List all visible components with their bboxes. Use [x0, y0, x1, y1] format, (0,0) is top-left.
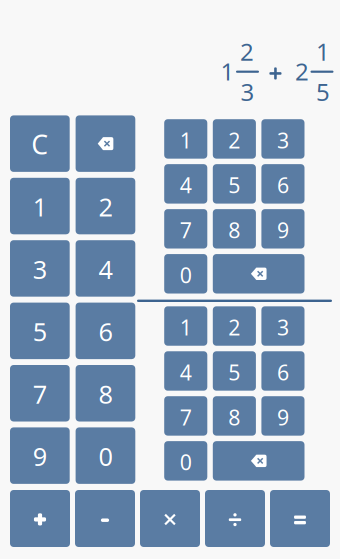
staticText: 6: [98, 315, 112, 348]
staticText: 9: [277, 216, 289, 244]
staticText: 3: [277, 313, 289, 341]
staticText: 6: [277, 358, 289, 386]
staticText: 7: [33, 377, 47, 411]
button[interactable]: 6: [261, 164, 304, 204]
staticText: 3: [33, 252, 47, 286]
button[interactable]: 2: [76, 178, 135, 234]
button[interactable]: Equals: [270, 490, 330, 547]
staticText: 2: [228, 313, 240, 341]
staticText: 4: [180, 358, 192, 386]
button[interactable]: Delete: [213, 254, 304, 294]
button[interactable]: C: [10, 115, 70, 172]
staticText: 0: [98, 439, 112, 473]
staticText: 4: [180, 171, 192, 199]
button[interactable]: 1: [164, 306, 207, 346]
staticText: 2: [240, 36, 254, 67]
button[interactable]: Plus: [10, 490, 70, 547]
button[interactable]: 8: [213, 209, 256, 249]
button[interactable]: 3: [261, 306, 304, 346]
staticText: 6: [277, 171, 289, 199]
staticText: 5: [228, 358, 240, 386]
button[interactable]: 1: [164, 119, 207, 159]
staticText: 8: [98, 377, 112, 411]
staticText: 8: [228, 216, 240, 244]
staticText: 3: [240, 76, 254, 108]
button[interactable]: 1: [10, 178, 70, 234]
button[interactable]: 7: [164, 209, 207, 249]
button[interactable]: 3: [261, 119, 304, 159]
staticText: 1: [180, 126, 192, 154]
button[interactable]: Delete: [213, 441, 304, 481]
staticText: 9: [277, 403, 289, 431]
staticText: 0: [180, 448, 192, 476]
button[interactable]: 5: [213, 164, 256, 204]
button[interactable]: 9: [261, 209, 304, 249]
staticText: C: [31, 126, 48, 162]
button[interactable]: 9: [10, 427, 70, 484]
button[interactable]: 0: [76, 427, 135, 484]
button[interactable]: 4: [164, 351, 207, 391]
button[interactable]: 0: [164, 441, 207, 481]
button[interactable]: 4: [76, 240, 135, 297]
button[interactable]: 4: [164, 164, 207, 204]
staticText: 2: [228, 126, 240, 154]
staticText: 1: [180, 313, 192, 341]
staticText: 3: [277, 126, 289, 154]
staticText: 2: [295, 55, 309, 87]
button[interactable]: 8: [76, 365, 135, 421]
staticText: 7: [180, 403, 192, 431]
button[interactable]: 6: [261, 351, 304, 391]
staticText: 7: [180, 216, 192, 244]
button[interactable]: Multiply: [140, 490, 200, 547]
staticText: 1: [33, 190, 47, 223]
button[interactable]: 9: [261, 396, 304, 436]
staticText: 9: [33, 439, 47, 473]
button[interactable]: Minus: [75, 490, 135, 547]
staticText: 2: [98, 190, 112, 223]
button[interactable]: 8: [213, 396, 256, 436]
staticText: 0: [180, 261, 192, 289]
staticText: 1: [220, 55, 234, 87]
staticText: 5: [316, 76, 330, 108]
button[interactable]: 5: [213, 351, 256, 391]
button[interactable]: 3: [10, 240, 70, 297]
button[interactable]: 2: [213, 119, 256, 159]
staticText: 5: [33, 315, 47, 348]
button[interactable]: 0: [164, 254, 207, 294]
button[interactable]: 5: [10, 303, 70, 359]
button[interactable]: 7: [164, 396, 207, 436]
staticText: 1: [316, 36, 330, 67]
button[interactable]: Delete: [76, 115, 135, 172]
staticText: 4: [98, 252, 112, 286]
button[interactable]: Divide: [205, 490, 265, 547]
button[interactable]: 6: [76, 303, 135, 359]
staticText: 8: [228, 403, 240, 431]
staticText: 5: [228, 171, 240, 199]
button[interactable]: 7: [10, 365, 70, 421]
button[interactable]: 2: [213, 306, 256, 346]
